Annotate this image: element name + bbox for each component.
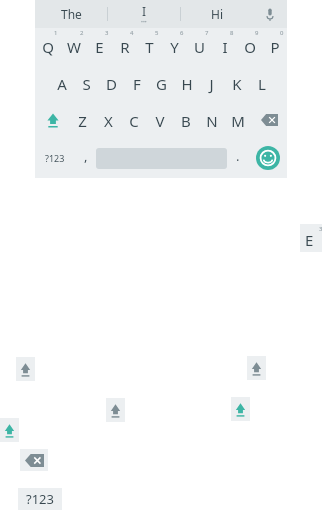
staticText: Hi	[211, 6, 223, 22]
staticText: Z	[78, 111, 87, 131]
button[interactable]: O	[237, 28, 262, 64]
staticText: X	[104, 111, 113, 131]
staticText: E	[95, 37, 104, 57]
button[interactable]: .	[227, 138, 248, 178]
staticText: F	[133, 74, 141, 94]
button[interactable]: E	[300, 224, 322, 252]
button[interactable]: Delete	[20, 449, 48, 471]
button[interactable]: ?123	[35, 138, 75, 178]
staticText: W	[67, 37, 81, 57]
staticText: K	[232, 74, 242, 94]
button[interactable]: T	[137, 28, 162, 64]
staticText: 1	[54, 29, 58, 37]
staticText: R	[120, 37, 130, 57]
button[interactable]: A	[49, 64, 74, 101]
button[interactable]: ,	[75, 138, 96, 178]
button[interactable]: U	[187, 28, 212, 64]
staticText: G	[156, 74, 167, 94]
button[interactable]: Hi	[181, 0, 253, 28]
button[interactable]: W	[61, 28, 87, 64]
button[interactable]: R	[112, 28, 137, 64]
button[interactable]: Delete	[251, 101, 287, 138]
staticText: L	[258, 74, 266, 94]
staticText: A	[57, 74, 67, 94]
staticText: 4	[130, 29, 134, 37]
button[interactable]: K	[224, 64, 249, 101]
staticText: E	[305, 230, 314, 250]
staticText: C	[129, 111, 139, 131]
button[interactable]: L	[249, 64, 274, 101]
staticText: V	[155, 111, 165, 131]
button[interactable]: Shift	[106, 398, 125, 422]
button[interactable]: M	[225, 101, 251, 138]
staticText: •••	[141, 19, 147, 26]
button[interactable]: Shift	[247, 356, 266, 380]
staticText: The	[61, 6, 82, 22]
button[interactable]: Emoji	[248, 138, 287, 178]
staticText: .	[236, 147, 240, 165]
button[interactable]: Shift	[16, 357, 35, 381]
button[interactable]: Q	[35, 28, 61, 64]
staticText: 3	[319, 225, 322, 233]
button[interactable]: F	[124, 64, 149, 101]
button[interactable]: H	[174, 64, 199, 101]
staticText: Y	[170, 37, 179, 57]
button[interactable]: I	[108, 0, 180, 28]
button[interactable]: S	[74, 64, 99, 101]
staticText: I	[222, 37, 228, 57]
button[interactable]: P	[262, 28, 287, 64]
staticText: S	[82, 74, 91, 94]
staticText: O	[244, 37, 256, 57]
button[interactable]: J	[199, 64, 224, 101]
staticText: J	[209, 74, 214, 94]
staticText: U	[194, 37, 205, 57]
staticText: T	[145, 37, 154, 57]
button[interactable]: V	[147, 101, 173, 138]
staticText: H	[181, 74, 193, 94]
staticText: B	[181, 111, 191, 131]
button[interactable]: Y	[162, 28, 187, 64]
button[interactable]: E	[87, 28, 112, 64]
staticText: 6	[180, 29, 184, 37]
button[interactable]: ?123	[18, 488, 62, 510]
button[interactable]: Shift	[35, 101, 70, 138]
button[interactable]: D	[99, 64, 124, 101]
button[interactable]: G	[149, 64, 174, 101]
staticText: ?123	[26, 490, 54, 508]
staticText: 2	[80, 29, 84, 37]
button[interactable]: Shift	[0, 418, 19, 442]
staticText: 7	[205, 29, 209, 37]
staticText: 0	[280, 29, 284, 37]
button[interactable]: I	[212, 28, 237, 64]
staticText: N	[206, 111, 218, 131]
button[interactable]: The	[35, 0, 107, 28]
staticText: P	[270, 37, 280, 57]
button[interactable]	[96, 138, 227, 178]
staticText: 9	[255, 29, 259, 37]
staticText: 3	[105, 29, 109, 37]
staticText: M	[231, 111, 245, 131]
button[interactable]: Shift	[231, 397, 250, 421]
button[interactable]: Z	[70, 101, 95, 138]
staticText: D	[106, 74, 117, 94]
button[interactable]: C	[121, 101, 147, 138]
staticText: ?123	[45, 152, 65, 164]
button[interactable]: Voice input	[253, 0, 287, 28]
button[interactable]: B	[173, 101, 199, 138]
staticText: ,	[84, 147, 88, 165]
button[interactable]: N	[199, 101, 225, 138]
staticText: I	[142, 3, 147, 19]
staticText: Q	[42, 37, 54, 57]
staticText: 5	[155, 29, 159, 37]
button[interactable]: X	[95, 101, 121, 138]
staticText: 8	[230, 29, 234, 37]
